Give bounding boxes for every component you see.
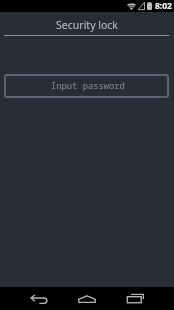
staticText: Security lock <box>56 18 118 32</box>
button[interactable]: Back <box>14 287 63 310</box>
button[interactable]: Home <box>63 287 111 310</box>
button[interactable]: Recent apps <box>111 287 159 310</box>
staticText: 8:02 <box>155 0 172 12</box>
staticText: Input password <box>51 80 125 92</box>
button[interactable]: Input password <box>4 74 169 98</box>
